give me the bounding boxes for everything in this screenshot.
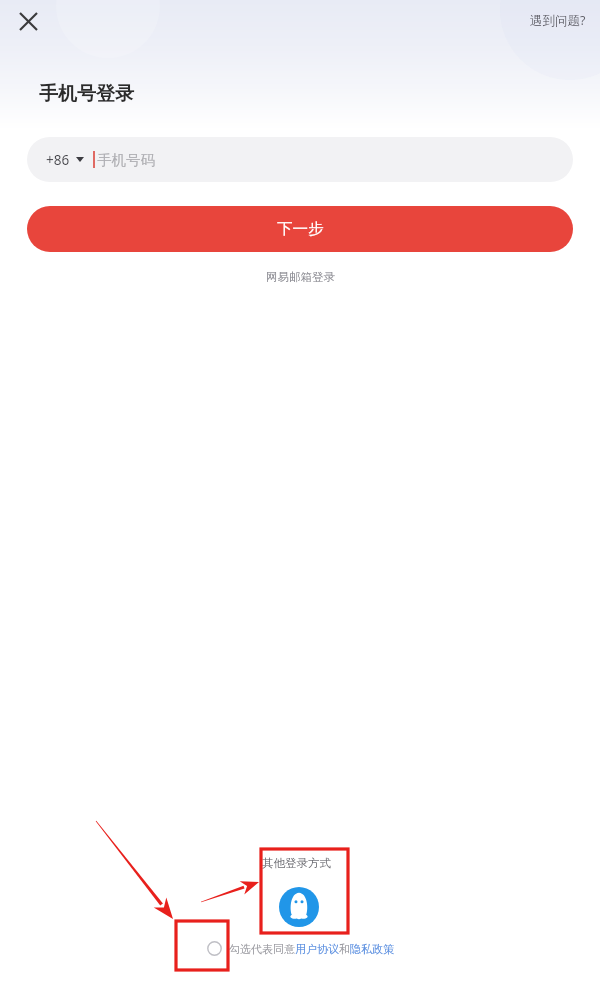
button[interactable]: QQ 登录: [279, 887, 319, 927]
staticText: 手机号码: [97, 151, 155, 169]
staticText: +86: [46, 151, 70, 169]
button[interactable]: 勾选代表同意: [0, 941, 600, 956]
button[interactable]: 下一步: [27, 206, 573, 252]
button[interactable]: +86: [27, 137, 573, 182]
staticText: 勾选代表同意: [229, 942, 295, 956]
button[interactable]: 遇到问题?: [516, 6, 600, 35]
staticText: 手机号登录: [39, 82, 134, 106]
button[interactable]: 网易邮箱登录: [250, 266, 351, 288]
staticText: 遇到问题?: [530, 12, 586, 29]
button[interactable]: Close: [12, 5, 44, 37]
staticText: 用户协议: [295, 942, 339, 956]
staticText: 网易邮箱登录: [266, 270, 335, 284]
staticText: 和: [339, 942, 350, 956]
staticText: 其他登录方式: [262, 856, 331, 870]
staticText: 下一步: [277, 219, 324, 239]
staticText: 隐私政策: [350, 942, 394, 956]
